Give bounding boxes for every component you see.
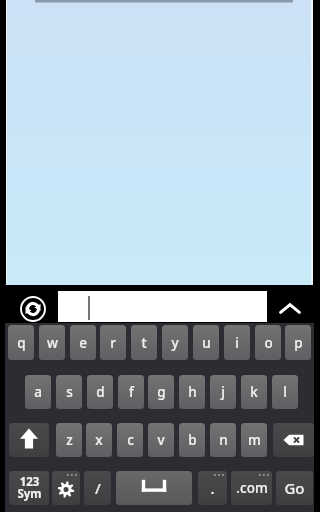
button[interactable]: b [179, 423, 205, 457]
staticText: l [283, 383, 287, 401]
staticText: . [210, 478, 215, 498]
staticText: w [47, 334, 58, 352]
staticText: s [66, 383, 73, 401]
button[interactable]: Space [116, 471, 192, 505]
staticText: f [129, 383, 134, 401]
button[interactable]: g [148, 375, 174, 409]
staticText: t [141, 334, 147, 352]
button[interactable]: Refresh [13, 291, 53, 327]
staticText: Go [284, 478, 305, 498]
button[interactable]: e [70, 325, 96, 360]
button[interactable]: p [285, 325, 311, 360]
button[interactable]: r [100, 325, 126, 360]
staticText: z [66, 431, 73, 449]
button[interactable]: m [241, 423, 267, 457]
button[interactable]: / [84, 471, 111, 505]
button[interactable]: . [198, 471, 227, 505]
button[interactable]: Settings [52, 471, 80, 505]
staticText: y [171, 334, 179, 352]
staticText: n [219, 431, 228, 449]
button[interactable]: u [193, 325, 219, 360]
button[interactable]: j [210, 375, 236, 409]
button[interactable]: n [210, 423, 236, 457]
button[interactable]: v [148, 423, 174, 457]
button[interactable]: Backspace [273, 423, 314, 457]
button[interactable]: h [179, 375, 205, 409]
staticText: .com [236, 479, 268, 497]
button[interactable]: w [39, 325, 65, 360]
staticText: x [95, 431, 103, 449]
button[interactable]: k [241, 375, 267, 409]
button[interactable]: .com [231, 471, 272, 505]
button[interactable]: l [272, 375, 298, 409]
staticText: j [221, 383, 225, 401]
staticText: q [17, 334, 26, 352]
staticText: m [248, 431, 261, 449]
button[interactable]: Go [276, 471, 313, 505]
staticText: u [202, 334, 211, 352]
staticText: a [34, 383, 42, 401]
button[interactable]: a [25, 375, 51, 409]
button[interactable]: y [162, 325, 188, 360]
staticText: k [250, 383, 258, 401]
staticText: / [95, 478, 101, 498]
button[interactable]: i [224, 325, 250, 360]
staticText: c [127, 431, 134, 449]
button[interactable]: Collapse toolbar [267, 291, 313, 322]
staticText: o [264, 334, 273, 352]
button[interactable]: 123 Sym [9, 471, 49, 505]
button[interactable]: d [87, 375, 113, 409]
staticText: e [79, 334, 87, 352]
button[interactable]: s [56, 375, 82, 409]
button[interactable] [58, 291, 267, 322]
button[interactable]: q [8, 325, 34, 360]
button[interactable]: t [131, 325, 157, 360]
button[interactable]: x [86, 423, 112, 457]
staticText: g [157, 383, 166, 401]
staticText: i [235, 334, 239, 352]
staticText: v [157, 431, 165, 449]
staticText: 123 Sym [17, 474, 42, 502]
staticText: h [188, 383, 197, 401]
staticText: r [110, 334, 116, 352]
button[interactable]: o [255, 325, 281, 360]
button[interactable]: z [56, 423, 82, 457]
button[interactable]: c [117, 423, 143, 457]
staticText: p [294, 334, 303, 352]
staticText: d [96, 383, 105, 401]
staticText: b [188, 431, 197, 449]
button[interactable]: Shift [9, 423, 49, 457]
button[interactable]: f [118, 375, 144, 409]
